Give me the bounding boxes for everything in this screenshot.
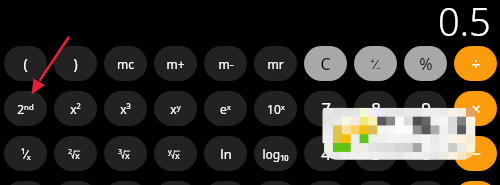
button[interactable]: xʸ xyxy=(154,91,197,126)
button[interactable]: 3 xyxy=(404,181,447,185)
staticText: x xyxy=(175,149,180,161)
button[interactable]: x³ xyxy=(104,91,147,126)
staticText: m- xyxy=(218,56,234,72)
staticText: 10ˣ xyxy=(267,101,285,117)
button[interactable]: ÷ xyxy=(454,46,497,81)
button[interactable]: 5 xyxy=(354,136,397,171)
staticText: ÷ xyxy=(471,53,481,75)
staticText: 7 xyxy=(321,97,331,120)
button[interactable]: ¹⁄ₓ xyxy=(4,136,47,171)
staticText: ( xyxy=(23,54,28,73)
staticText: 5 xyxy=(371,142,381,165)
staticText: x xyxy=(125,149,130,161)
button[interactable]: 2 xyxy=(354,181,397,185)
button[interactable]: 8 xyxy=(354,91,397,126)
staticText: m+ xyxy=(166,56,185,72)
button[interactable]: e xyxy=(204,181,247,185)
button[interactable]: C xyxy=(304,46,347,81)
button[interactable]: 2 root of x xyxy=(54,136,97,171)
button[interactable]: 9 xyxy=(404,91,447,126)
button[interactable]: 4 xyxy=(304,136,347,171)
staticText: mr xyxy=(267,56,284,72)
staticText: % xyxy=(419,53,433,75)
button[interactable]: % xyxy=(404,46,447,81)
button[interactable]: tan xyxy=(154,181,197,185)
button[interactable]: sin xyxy=(54,181,97,185)
staticText: 0.5 xyxy=(438,0,491,37)
button[interactable]: ⁺⁄₋ xyxy=(354,46,397,81)
staticText: 8 xyxy=(371,97,381,120)
button[interactable]: eˣ xyxy=(204,91,247,126)
button[interactable]: × xyxy=(454,91,497,126)
staticText: mc xyxy=(117,56,134,72)
staticText: xʸ xyxy=(170,101,181,117)
staticText: eˣ xyxy=(220,101,231,117)
button[interactable]: 10ˣ xyxy=(254,91,297,126)
staticText: − xyxy=(471,142,481,165)
button[interactable]: ( xyxy=(4,46,47,81)
staticText: 9 xyxy=(421,97,431,120)
staticText: 4 xyxy=(321,142,331,165)
button[interactable]: mc xyxy=(104,46,147,81)
staticText: ⁺⁄₋ xyxy=(370,55,381,73)
staticText: log₁₀ xyxy=(262,146,289,162)
button[interactable]: y root of x xyxy=(154,136,197,171)
staticText: x³ xyxy=(120,101,131,117)
button[interactable]: log₁₀ xyxy=(254,136,297,171)
button[interactable]: ) xyxy=(54,46,97,81)
staticText: y xyxy=(168,147,172,157)
staticText: ln xyxy=(220,145,232,163)
button[interactable]: 2ⁿᵈ xyxy=(4,91,47,126)
button[interactable]: ln xyxy=(204,136,247,171)
staticText: ¹⁄ₓ xyxy=(21,146,31,162)
staticText: x xyxy=(75,149,80,161)
button[interactable]: 1 xyxy=(304,181,347,185)
staticText: × xyxy=(471,98,481,120)
staticText: 6 xyxy=(421,142,431,165)
staticText: 2 xyxy=(68,147,73,157)
button[interactable]: cos xyxy=(104,181,147,185)
button[interactable]: + xyxy=(454,181,497,185)
button[interactable]: m+ xyxy=(154,46,197,81)
button[interactable]: 6 xyxy=(404,136,447,171)
staticText: ) xyxy=(73,54,78,73)
staticText: 3 xyxy=(118,147,123,157)
button[interactable]: x! xyxy=(4,181,47,185)
staticText: C xyxy=(320,53,331,75)
button[interactable]: 3 root of x xyxy=(104,136,147,171)
button[interactable]: m- xyxy=(204,46,247,81)
staticText: x² xyxy=(70,101,81,117)
staticText: 2ⁿᵈ xyxy=(17,101,34,117)
button[interactable]: x² xyxy=(54,91,97,126)
button[interactable]: mr xyxy=(254,46,297,81)
button[interactable]: − xyxy=(454,136,497,171)
button[interactable]: 7 xyxy=(304,91,347,126)
button[interactable]: EE xyxy=(254,181,297,185)
